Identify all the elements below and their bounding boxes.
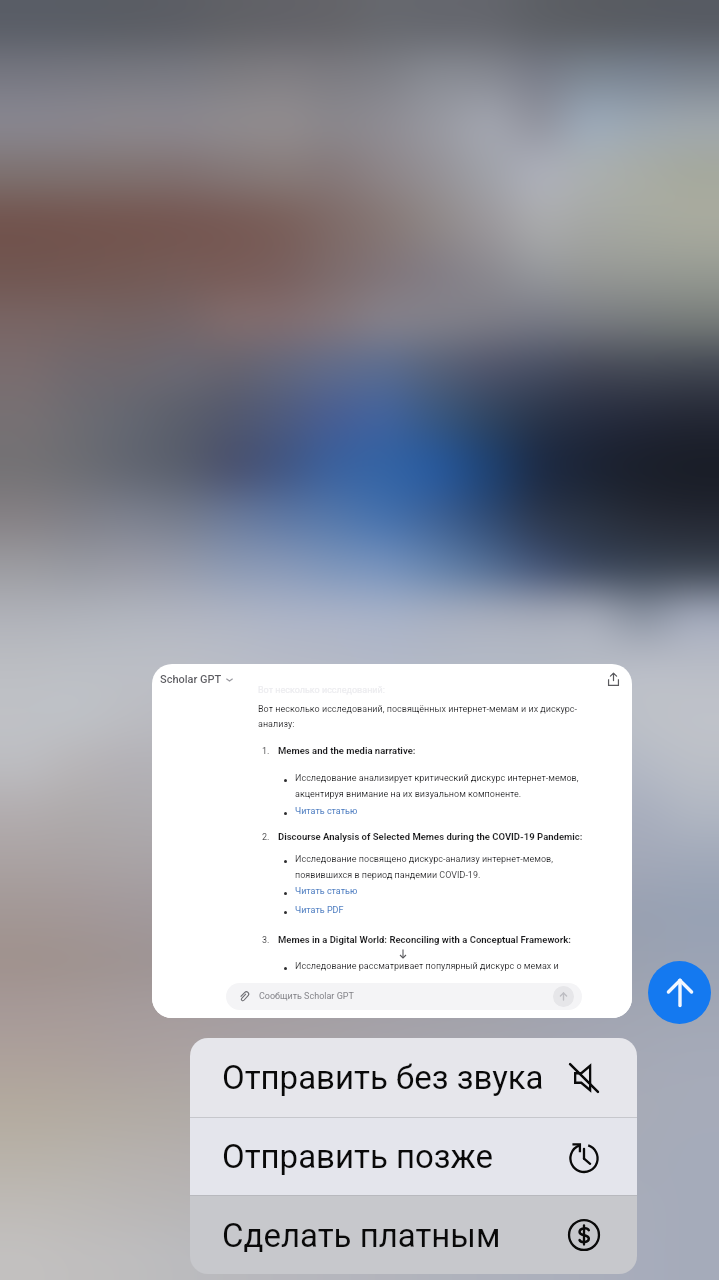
button[interactable]: Отправить без звука [190, 1038, 637, 1117]
button[interactable]: Сообщить Scholar GPT [226, 983, 582, 1010]
button[interactable]: Share [602, 668, 624, 690]
staticText: Сделать платным [222, 1216, 567, 1255]
button[interactable]: Send message [553, 986, 574, 1007]
staticText: Читать статью [295, 886, 358, 897]
staticText: 1. [262, 746, 270, 757]
staticText: Исследование анализирует критический дис… [295, 773, 579, 784]
staticText: анализу: [258, 719, 295, 730]
button[interactable]: Scholar GPT [152, 664, 632, 1018]
staticText: Scholar GPT [160, 673, 222, 686]
staticText: Memes and the media narrative: [278, 745, 416, 756]
button[interactable]: Send [648, 961, 711, 1024]
staticText: Исследование рассматривает популярный ди… [295, 961, 559, 972]
button[interactable]: Отправить позже [190, 1118, 637, 1195]
staticText: появившихся в период пандемии COVID-19. [295, 870, 481, 881]
staticText: Вот несколько исследований, посвящённых … [258, 704, 578, 715]
staticText: Сообщить Scholar GPT [259, 991, 354, 1002]
staticText: Memes in a Digital World: Reconciling wi… [278, 934, 571, 945]
staticText: Читать PDF [295, 905, 344, 916]
staticText: акцентируя внимание на их визуальном ком… [295, 789, 522, 800]
staticText: Отправить позже [222, 1137, 567, 1176]
staticText: Исследование посвящено дискурс-анализу и… [295, 854, 554, 865]
staticText: Читать статью [295, 806, 358, 817]
staticText: 3. [262, 935, 270, 946]
staticText: Отправить без звука [222, 1058, 567, 1097]
staticText: 2. [262, 832, 270, 843]
button[interactable]: Сделать платным [190, 1196, 637, 1274]
staticText: Discourse Analysis of Selected Memes dur… [278, 831, 583, 842]
staticText: Вот несколько исследований: [258, 685, 385, 696]
